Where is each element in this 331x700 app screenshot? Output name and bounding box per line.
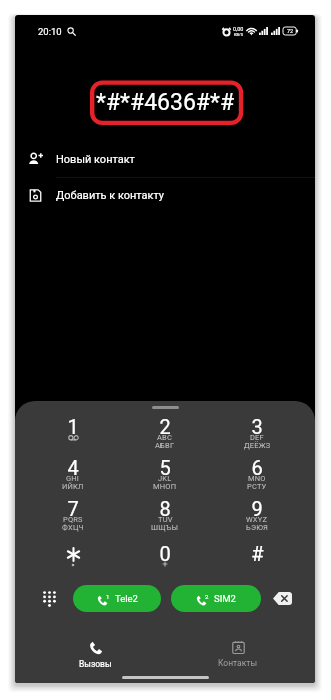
staticText: 2 — [205, 593, 209, 600]
staticText: TUV — [158, 515, 173, 524]
staticText: KB/S — [234, 32, 244, 37]
staticText: ABC — [157, 433, 173, 442]
button[interactable]: Добавить к контакту — [15, 178, 315, 213]
staticText: 7 — [67, 497, 79, 520]
staticText: ДЕЁЖЗ — [244, 441, 271, 450]
staticText: PQRS — [63, 515, 83, 524]
button[interactable]: 2 — [119, 415, 211, 455]
staticText: 20:10 — [38, 26, 62, 37]
staticText: 4 — [67, 456, 79, 479]
staticText: ЬЭЮЯ — [246, 523, 269, 532]
staticText: WXYZ — [246, 515, 268, 524]
staticText: ИЙКЛ — [62, 482, 84, 491]
staticText: DEF — [250, 433, 264, 442]
staticText: РСТУ — [247, 482, 267, 491]
button[interactable]: Контакты — [202, 641, 274, 675]
staticText: 2 — [159, 415, 171, 438]
button[interactable]: 0 — [119, 542, 211, 582]
button[interactable]: 3 — [211, 415, 303, 455]
button[interactable]: 1 — [27, 415, 119, 455]
staticText: МНОП — [153, 482, 177, 491]
staticText: Tele2 — [115, 593, 138, 604]
button[interactable]: # — [211, 542, 303, 582]
staticText: SIM2 — [214, 593, 236, 604]
button[interactable]: 9 — [211, 497, 303, 537]
staticText: JKL — [158, 474, 172, 483]
staticText: 8 — [159, 497, 171, 520]
staticText: Контакты — [218, 658, 258, 668]
button[interactable]: Удалить — [268, 585, 296, 612]
staticText: АБВГ — [155, 441, 175, 450]
button[interactable]: 7 — [27, 497, 119, 537]
staticText: 0 — [159, 542, 171, 565]
button[interactable] — [27, 542, 119, 582]
staticText: Вызовы — [79, 659, 112, 669]
staticText: *#*#4636#*# — [96, 89, 235, 116]
button[interactable]: Вызовы — [59, 641, 131, 675]
staticText: 1 — [106, 593, 110, 600]
staticText: MNO — [248, 474, 266, 483]
staticText: 3 — [251, 415, 263, 438]
staticText: Добавить к контакту — [56, 189, 165, 202]
button[interactable]: 6 — [211, 456, 303, 496]
staticText: GHI — [66, 474, 80, 483]
staticText: # — [251, 542, 264, 565]
button[interactable]: 4 — [27, 456, 119, 496]
staticText: ШЩЪЫ — [151, 523, 179, 532]
button[interactable]: Новый контакт — [15, 142, 315, 177]
staticText: 72 — [287, 28, 294, 34]
staticText: 6 — [251, 456, 263, 479]
staticText: 0,00 — [233, 26, 244, 32]
staticText: 5 — [159, 456, 171, 479]
button[interactable]: 5 — [119, 456, 211, 496]
staticText: 9 — [251, 497, 263, 520]
staticText: Новый контакт — [56, 153, 135, 166]
button[interactable]: 2 — [171, 585, 261, 612]
staticText: 1 — [67, 415, 79, 438]
button[interactable]: Клавиатура — [35, 585, 63, 612]
button[interactable]: 1 — [73, 585, 161, 612]
button[interactable]: 8 — [119, 497, 211, 537]
staticText: ФХЦЧ — [62, 523, 84, 532]
